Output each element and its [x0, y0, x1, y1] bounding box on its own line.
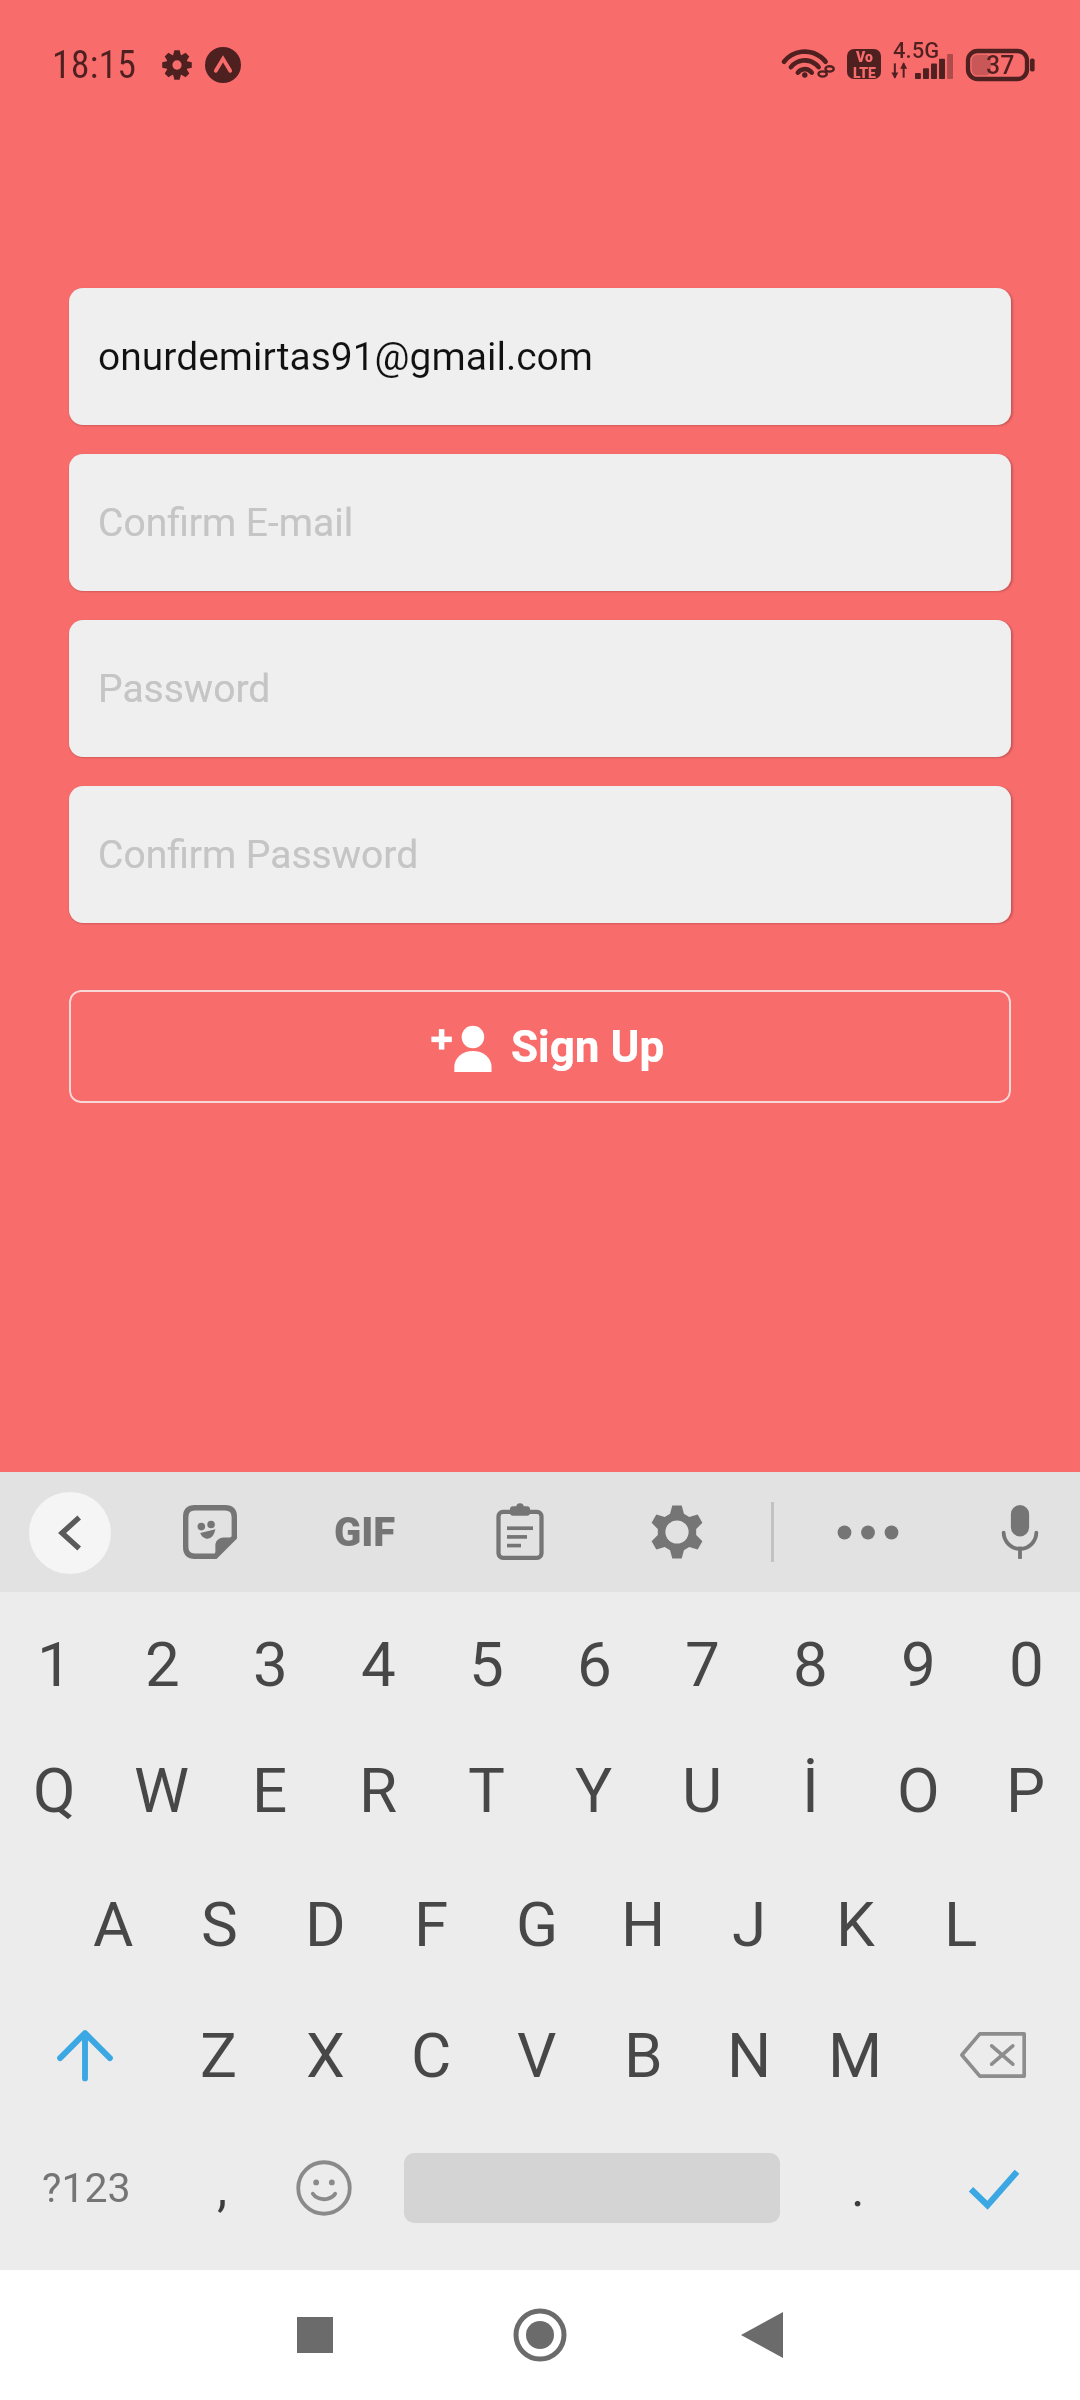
- staticText: .: [851, 2158, 865, 2219]
- staticText: 37: [986, 51, 1015, 80]
- button[interactable]: 5: [432, 1602, 540, 1726]
- button[interactable]: Backspace: [938, 1995, 1048, 2115]
- staticText: A: [93, 1888, 134, 1961]
- staticText: P: [1006, 1754, 1046, 1827]
- button[interactable]: J: [696, 1862, 802, 1986]
- button[interactable]: 4: [324, 1602, 432, 1726]
- staticText: Sign Up: [511, 1021, 665, 1073]
- staticText: İ: [802, 1754, 819, 1827]
- button[interactable]: Stickers: [170, 1492, 250, 1572]
- button[interactable]: Z: [166, 1993, 272, 2117]
- staticText: L: [944, 1888, 978, 1961]
- button[interactable]: 1: [0, 1602, 108, 1726]
- button[interactable]: GIF: [320, 1506, 410, 1558]
- staticText: 9: [901, 1628, 936, 1701]
- button[interactable]: Clipboard: [480, 1492, 560, 1572]
- button[interactable]: T: [432, 1728, 540, 1852]
- staticText: X: [306, 2019, 345, 2092]
- button[interactable]: P: [972, 1728, 1080, 1852]
- button[interactable]: D: [272, 1862, 378, 1986]
- button[interactable]: .: [800, 2126, 916, 2250]
- staticText: 6: [577, 1628, 612, 1701]
- staticText: GIF: [334, 1509, 396, 1556]
- button[interactable]: ,: [164, 2126, 280, 2250]
- staticText: Y: [575, 1754, 613, 1827]
- staticText: V: [517, 2019, 557, 2092]
- button[interactable]: W: [108, 1728, 216, 1852]
- button[interactable]: İ: [756, 1728, 864, 1852]
- button[interactable]: G: [484, 1862, 590, 1986]
- button[interactable]: A: [60, 1862, 166, 1986]
- staticText: Password: [98, 666, 271, 712]
- staticText: Q: [33, 1754, 76, 1827]
- button[interactable]: 0: [972, 1602, 1080, 1726]
- button[interactable]: Home: [500, 2295, 580, 2375]
- button[interactable]: Sign Up: [69, 990, 1011, 1103]
- button[interactable]: Y: [540, 1728, 648, 1852]
- button[interactable]: 6: [540, 1602, 648, 1726]
- staticText: Confirm Password: [98, 832, 419, 878]
- staticText: B: [624, 2019, 663, 2092]
- button[interactable]: O: [864, 1728, 972, 1852]
- button[interactable]: F: [378, 1862, 484, 1986]
- button[interactable]: V: [484, 1993, 590, 2117]
- button[interactable]: Shift: [31, 1995, 139, 2115]
- button[interactable]: U: [648, 1728, 756, 1852]
- staticText: 18:15: [52, 43, 136, 88]
- button[interactable]: onurdemirtas91@gmail.com: [69, 288, 1011, 425]
- button[interactable]: Enter: [936, 2126, 1052, 2250]
- button[interactable]: Keyboard settings: [637, 1492, 717, 1572]
- button[interactable]: Q: [0, 1728, 108, 1852]
- staticText: N: [727, 2019, 772, 2092]
- button[interactable]: 3: [216, 1602, 324, 1726]
- button[interactable]: B: [590, 1993, 696, 2117]
- staticText: K: [836, 1888, 875, 1961]
- staticText: Vo: [856, 49, 873, 65]
- button[interactable]: Recent apps: [275, 2295, 355, 2375]
- button[interactable]: ?123: [16, 2126, 156, 2250]
- button[interactable]: H: [590, 1862, 696, 1986]
- staticText: T: [468, 1754, 505, 1827]
- button[interactable]: N: [696, 1993, 802, 2117]
- staticText: 4: [361, 1628, 396, 1701]
- button[interactable]: S: [166, 1862, 272, 1986]
- button[interactable]: More options: [828, 1492, 908, 1572]
- staticText: D: [305, 1888, 346, 1961]
- staticText: 5: [469, 1628, 504, 1701]
- staticText: 8: [793, 1628, 828, 1701]
- staticText: onurdemirtas91@gmail.com: [98, 334, 594, 380]
- staticText: G: [516, 1888, 559, 1961]
- button[interactable]: 8: [756, 1602, 864, 1726]
- button[interactable]: 2: [108, 1602, 216, 1726]
- button[interactable]: Confirm E-mail: [69, 454, 1011, 591]
- button[interactable]: C: [378, 1993, 484, 2117]
- button[interactable]: Emoji: [266, 2126, 382, 2250]
- staticText: LTE: [853, 65, 876, 79]
- staticText: J: [732, 1888, 767, 1961]
- staticText: H: [621, 1888, 666, 1961]
- staticText: Confirm E-mail: [98, 500, 354, 546]
- button[interactable]: Voice input: [980, 1492, 1060, 1572]
- button[interactable]: R: [324, 1728, 432, 1852]
- button[interactable]: Close keyboard: [29, 1492, 111, 1574]
- button[interactable]: X: [272, 1993, 378, 2117]
- staticText: 3: [253, 1628, 288, 1701]
- staticText: 4.5G: [893, 38, 940, 64]
- staticText: S: [201, 1888, 238, 1961]
- staticText: F: [414, 1888, 449, 1961]
- button[interactable]: Password: [69, 620, 1011, 757]
- staticText: 1: [37, 1628, 72, 1701]
- staticText: Z: [200, 2019, 238, 2092]
- staticText: E: [252, 1754, 288, 1827]
- button[interactable]: K: [802, 1862, 908, 1986]
- button[interactable]: M: [802, 1993, 908, 2117]
- staticText: 2: [145, 1628, 180, 1701]
- button[interactable]: Confirm Password: [69, 786, 1011, 923]
- button[interactable]: L: [908, 1862, 1014, 1986]
- button[interactable]: Back: [722, 2295, 802, 2375]
- button[interactable]: 9: [864, 1602, 972, 1726]
- staticText: ,: [217, 2158, 228, 2219]
- button[interactable]: E: [216, 1728, 324, 1852]
- button[interactable]: 7: [648, 1602, 756, 1726]
